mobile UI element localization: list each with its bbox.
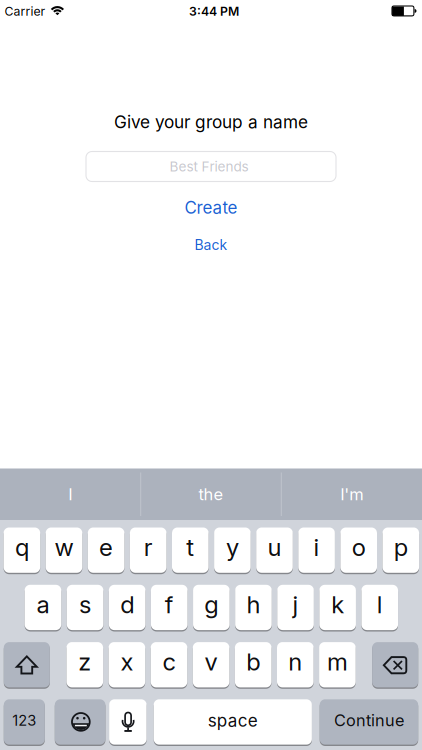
- button[interactable]: b: [235, 641, 271, 688]
- staticText: c: [162, 647, 175, 676]
- staticText: e: [99, 533, 113, 562]
- staticText: Best Friends: [169, 158, 248, 175]
- staticText: k: [331, 590, 344, 619]
- button[interactable]: u: [256, 526, 293, 574]
- staticText: d: [120, 590, 134, 619]
- staticText: a: [36, 590, 49, 619]
- staticText: Continue: [334, 711, 404, 730]
- staticText: w: [54, 533, 73, 562]
- staticText: 3:44 PM: [189, 4, 239, 19]
- staticText: p: [394, 533, 408, 562]
- button[interactable]: Continue: [320, 698, 418, 746]
- button[interactable]: [372, 641, 418, 688]
- button[interactable]: a: [25, 584, 61, 631]
- button[interactable]: d: [109, 584, 145, 631]
- button[interactable]: o: [340, 526, 377, 574]
- staticText: Give your group a name: [114, 112, 308, 132]
- staticText: u: [267, 533, 281, 562]
- button[interactable]: I'm: [287, 474, 417, 514]
- button[interactable]: space: [154, 698, 312, 746]
- button[interactable]: [55, 698, 105, 746]
- button[interactable]: f: [151, 584, 188, 631]
- button[interactable]: j: [277, 584, 314, 631]
- button[interactable]: c: [151, 641, 187, 688]
- button[interactable]: k: [319, 584, 356, 631]
- button[interactable]: p: [382, 526, 419, 574]
- staticText: v: [205, 647, 218, 676]
- button[interactable]: x: [109, 641, 145, 688]
- button[interactable]: e: [88, 526, 124, 574]
- button[interactable]: l: [361, 584, 398, 631]
- staticText: z: [78, 647, 91, 676]
- staticText: s: [79, 590, 91, 619]
- button[interactable]: z: [66, 641, 103, 688]
- staticText: f: [165, 590, 174, 619]
- button[interactable]: Create: [184, 197, 237, 218]
- staticText: I: [68, 484, 72, 504]
- staticText: Back: [194, 236, 227, 253]
- staticText: space: [208, 710, 258, 731]
- button[interactable]: I: [5, 474, 135, 514]
- staticText: b: [246, 647, 260, 676]
- button[interactable]: t: [172, 526, 209, 574]
- button[interactable]: m: [319, 641, 356, 688]
- staticText: o: [352, 533, 366, 562]
- staticText: Create: [184, 197, 237, 218]
- button[interactable]: q: [4, 526, 40, 574]
- staticText: 123: [12, 712, 36, 729]
- button[interactable]: g: [193, 584, 230, 631]
- button[interactable]: h: [235, 584, 272, 631]
- button[interactable]: the: [146, 474, 276, 514]
- button[interactable]: r: [130, 526, 166, 574]
- button[interactable]: n: [277, 641, 314, 688]
- button[interactable]: v: [193, 641, 229, 688]
- staticText: Carrier: [4, 4, 45, 19]
- button[interactable]: Back: [194, 236, 227, 253]
- staticText: I'm: [340, 484, 363, 504]
- button[interactable]: Best Friends: [86, 151, 336, 181]
- staticText: t: [186, 533, 194, 562]
- staticText: i: [314, 533, 320, 562]
- button[interactable]: y: [214, 526, 251, 574]
- staticText: r: [144, 533, 153, 562]
- staticText: the: [198, 484, 223, 504]
- staticText: h: [246, 590, 260, 619]
- staticText: l: [377, 590, 383, 619]
- staticText: x: [120, 647, 133, 676]
- staticText: j: [293, 590, 299, 619]
- staticText: m: [327, 647, 348, 676]
- staticText: n: [288, 647, 302, 676]
- staticText: g: [204, 590, 218, 619]
- staticText: q: [15, 533, 29, 562]
- staticText: y: [226, 533, 239, 562]
- button[interactable]: [109, 698, 147, 746]
- button[interactable]: w: [46, 526, 82, 574]
- button[interactable]: i: [298, 526, 335, 574]
- button[interactable]: s: [67, 584, 103, 631]
- button[interactable]: 123: [4, 698, 45, 746]
- button[interactable]: [4, 641, 50, 688]
